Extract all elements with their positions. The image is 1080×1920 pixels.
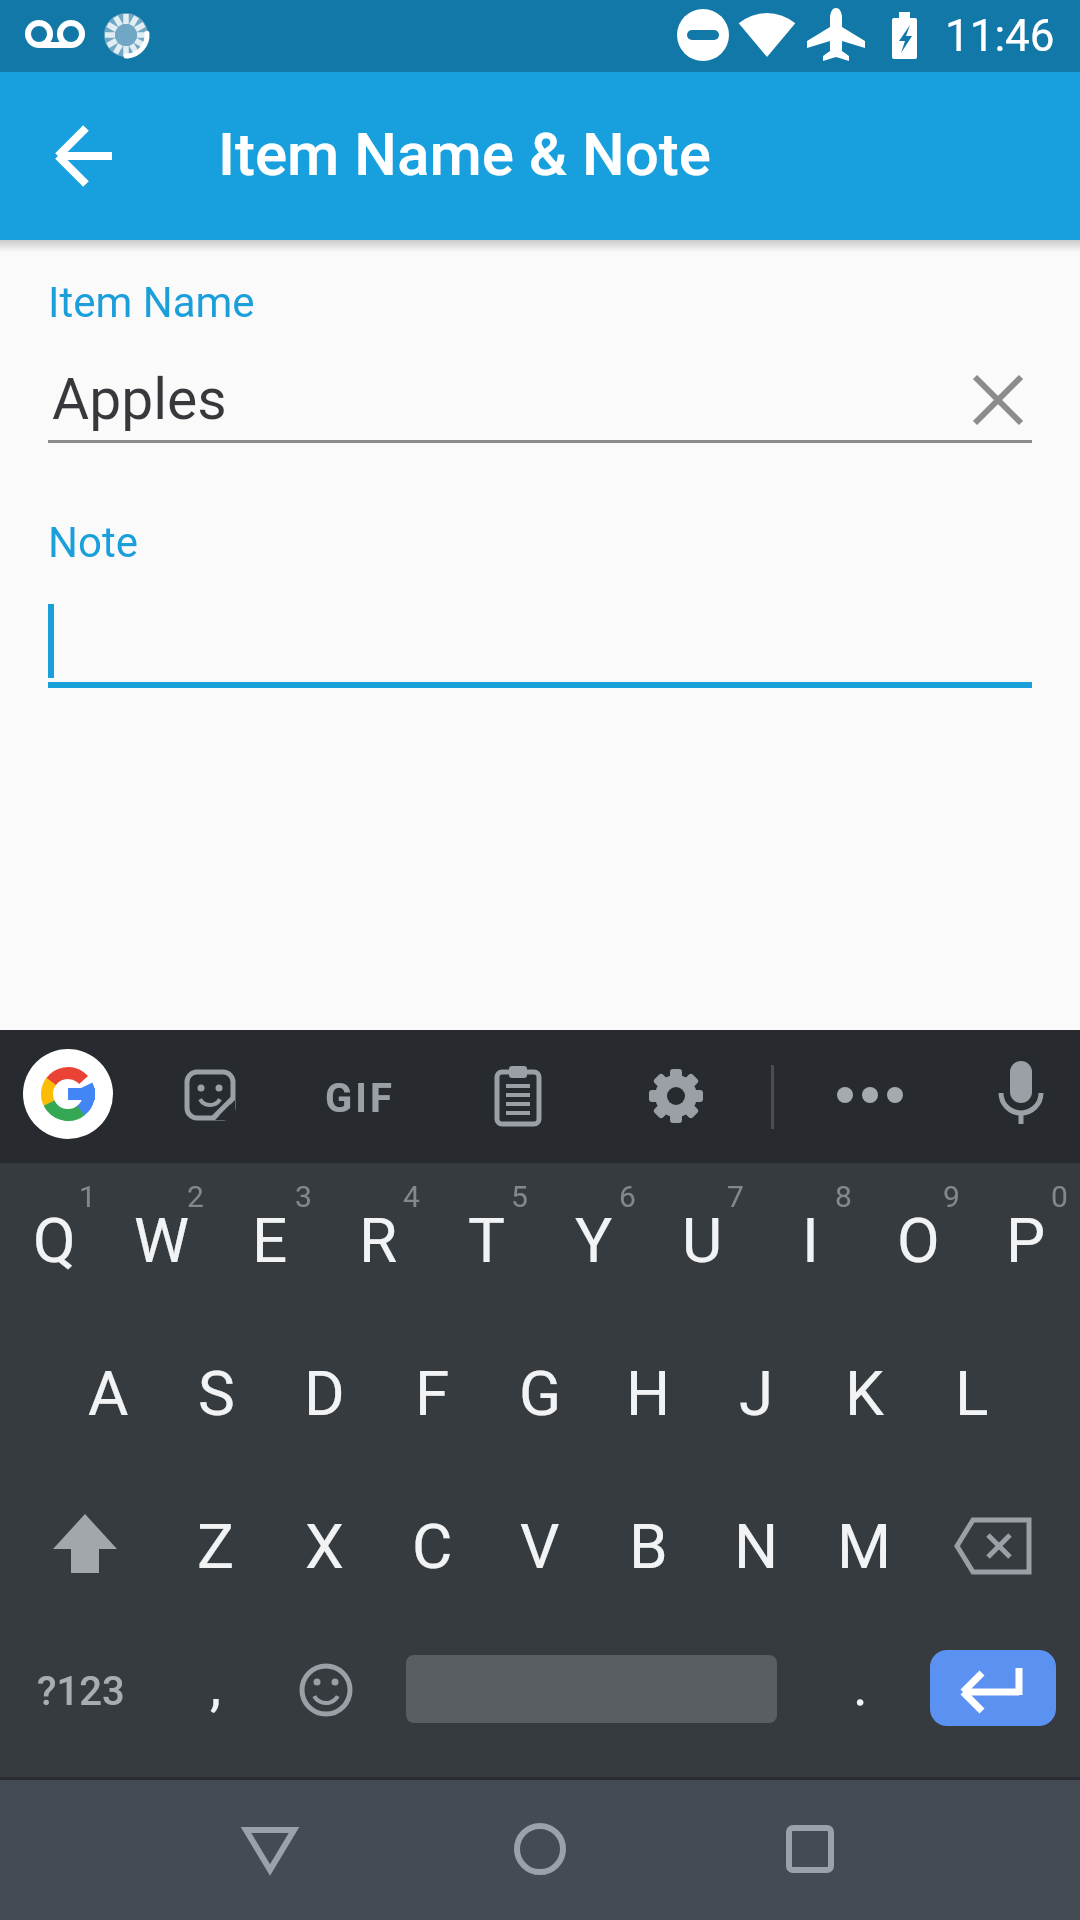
staticText: Apples	[52, 366, 227, 433]
staticText: P	[1006, 1204, 1046, 1277]
staticText: W	[134, 1204, 190, 1277]
staticText: GIF	[325, 1075, 395, 1122]
staticText: C	[412, 1510, 453, 1583]
staticText: J	[739, 1357, 774, 1430]
button[interactable]: R	[324, 1163, 432, 1317]
staticText: K	[845, 1357, 884, 1430]
button[interactable]: L	[918, 1317, 1026, 1470]
button[interactable]: M	[810, 1470, 918, 1623]
button[interactable]: G	[486, 1317, 594, 1470]
button[interactable]: N	[702, 1470, 810, 1623]
button[interactable]: J	[702, 1317, 810, 1470]
button[interactable]: I	[756, 1163, 864, 1317]
staticText: O	[897, 1204, 940, 1277]
staticText: 7	[727, 1179, 744, 1214]
button[interactable]: O	[864, 1163, 972, 1317]
staticText: 3	[295, 1179, 312, 1214]
button[interactable]: K	[810, 1317, 918, 1470]
button[interactable]: H	[594, 1317, 702, 1470]
staticText: B	[629, 1510, 668, 1583]
button[interactable]	[473, 1051, 563, 1141]
button[interactable]: C	[378, 1470, 486, 1623]
button[interactable]: W	[108, 1163, 216, 1317]
staticText: 1	[79, 1179, 96, 1214]
button[interactable]	[270, 1623, 394, 1777]
button[interactable]: T	[432, 1163, 540, 1317]
button[interactable]: ,	[162, 1623, 270, 1777]
button[interactable]: Y	[540, 1163, 648, 1317]
staticText: 4	[403, 1179, 420, 1214]
staticText: 9	[943, 1179, 960, 1214]
staticText: .	[853, 1653, 868, 1719]
staticText: S	[198, 1357, 235, 1430]
staticText: 11:46	[945, 10, 1055, 62]
button[interactable]: ?123	[0, 1623, 162, 1777]
staticText: 6	[619, 1179, 636, 1214]
staticText: 2	[187, 1179, 204, 1214]
button[interactable]: F	[378, 1317, 486, 1470]
staticText: 8	[835, 1179, 852, 1214]
staticText: T	[468, 1204, 505, 1277]
button[interactable]: D	[270, 1317, 378, 1470]
button[interactable]: S	[162, 1317, 270, 1470]
staticText: I	[802, 1204, 819, 1277]
button[interactable]	[165, 1051, 255, 1141]
button[interactable]: A	[54, 1317, 162, 1470]
button[interactable]	[23, 1049, 113, 1139]
button[interactable]: V	[486, 1470, 594, 1623]
staticText: D	[304, 1357, 345, 1430]
button[interactable]	[825, 1051, 915, 1141]
staticText: G	[519, 1357, 562, 1430]
button[interactable]: Z	[162, 1470, 270, 1623]
staticText: 5	[511, 1179, 528, 1214]
staticText: N	[734, 1510, 779, 1583]
button[interactable]: Q	[0, 1163, 108, 1317]
button[interactable]: P	[972, 1163, 1080, 1317]
staticText: U	[682, 1204, 723, 1277]
staticText: Note	[48, 518, 138, 567]
button[interactable]	[976, 1051, 1066, 1141]
button[interactable]: B	[594, 1470, 702, 1623]
staticText: 0	[1051, 1179, 1068, 1214]
button[interactable]: U	[648, 1163, 756, 1317]
staticText: Item Name & Note	[218, 119, 712, 189]
staticText: Q	[33, 1204, 76, 1277]
staticText: A	[88, 1357, 129, 1430]
button[interactable]: X	[270, 1470, 378, 1623]
button[interactable]: .	[806, 1623, 914, 1777]
staticText: X	[305, 1510, 344, 1583]
button[interactable]	[675, 1777, 945, 1920]
button[interactable]	[918, 1470, 1080, 1623]
button[interactable]	[960, 362, 1036, 438]
staticText: ?123	[37, 1668, 125, 1715]
button[interactable]	[135, 1777, 405, 1920]
staticText: H	[626, 1357, 671, 1430]
button[interactable]: Apples	[48, 366, 1080, 458]
staticText: L	[955, 1357, 989, 1430]
button[interactable]	[36, 108, 132, 204]
staticText: E	[252, 1204, 288, 1277]
button[interactable]	[0, 1470, 162, 1623]
staticText: ,	[210, 1653, 222, 1719]
button[interactable]	[631, 1051, 721, 1141]
staticText: Z	[197, 1510, 235, 1583]
staticText: M	[837, 1510, 892, 1583]
staticText: Item Name	[48, 278, 255, 327]
staticText: F	[415, 1357, 450, 1430]
button[interactable]	[405, 1777, 675, 1920]
staticText: V	[520, 1510, 560, 1583]
staticText: Y	[575, 1204, 613, 1277]
button[interactable]: E	[216, 1163, 324, 1317]
button[interactable]	[930, 1650, 1056, 1726]
staticText: R	[359, 1204, 398, 1277]
